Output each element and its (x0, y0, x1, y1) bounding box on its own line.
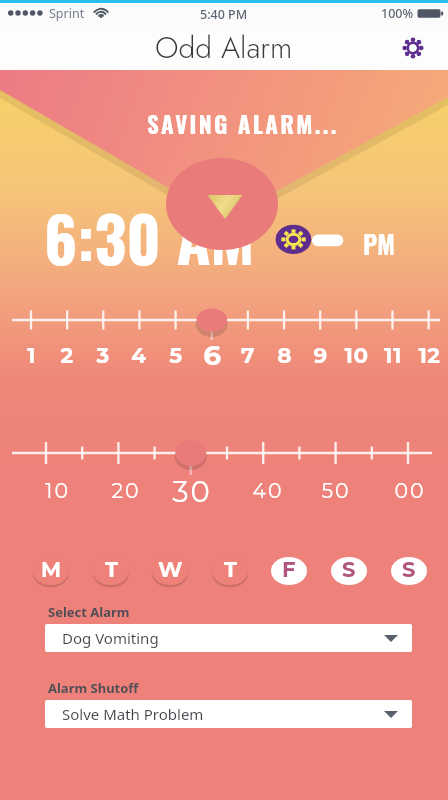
button[interactable]: 50 (308, 478, 364, 508)
staticText: 50 (321, 478, 351, 503)
staticText: 4 (131, 342, 147, 368)
button[interactable]: 30 (164, 474, 220, 504)
button[interactable]: Solve Math Problem (45, 700, 412, 728)
staticText: Alarm Shutoff (48, 679, 139, 697)
button[interactable]: 9 (300, 342, 340, 370)
button[interactable]: M (33, 557, 69, 585)
staticText: 6:30 AM (44, 191, 255, 283)
button[interactable]: Play alarm preview (166, 158, 278, 250)
staticText: 5 (169, 342, 183, 368)
button[interactable]: 7 (228, 342, 268, 370)
button[interactable]: 6 (192, 338, 232, 366)
staticText: 10 (344, 342, 369, 368)
staticText: 20 (111, 478, 141, 503)
staticText: Select Alarm (48, 603, 130, 621)
button[interactable]: 4 (119, 342, 159, 370)
button[interactable]: T (93, 557, 129, 585)
staticText: 1 (27, 342, 36, 368)
staticText: 8 (277, 342, 292, 368)
staticText: S (342, 557, 356, 583)
button[interactable]: S (391, 557, 427, 585)
button[interactable]: 2 (47, 342, 87, 370)
button[interactable]: 8 (264, 342, 304, 370)
staticText: F (282, 557, 296, 583)
staticText: W (158, 557, 183, 583)
button[interactable]: 12 (409, 342, 448, 370)
staticText: Odd Alarm (155, 26, 293, 69)
button[interactable]: 40 (240, 478, 296, 508)
button[interactable]: F (271, 557, 307, 585)
staticText: SAVING ALARM... (147, 107, 339, 141)
staticText: Sprint (49, 5, 85, 22)
staticText: 7 (241, 342, 255, 368)
staticText: Solve Math Problem (62, 704, 204, 724)
staticText: PM (363, 225, 395, 262)
staticText: 11 (384, 342, 402, 368)
staticText: Dog Vomiting (62, 628, 159, 648)
button[interactable]: Settings (391, 26, 435, 70)
staticText: 9 (313, 342, 328, 368)
staticText: 6 (203, 338, 222, 366)
staticText: 30 (172, 474, 212, 504)
button[interactable]: 10 (336, 342, 376, 370)
staticText: 100% (381, 5, 414, 22)
button[interactable]: 5 (156, 342, 196, 370)
staticText: 5:40 PM (200, 6, 248, 23)
button[interactable]: Toggle AM PM (274, 222, 346, 258)
staticText: 2 (60, 342, 74, 368)
staticText: 40 (252, 478, 284, 503)
staticText: 12 (418, 342, 441, 368)
button[interactable]: T (212, 557, 248, 585)
button[interactable]: 11 (373, 342, 413, 370)
staticText: 10 (45, 478, 70, 503)
staticText: 3 (96, 342, 110, 368)
button[interactable]: 00 (382, 478, 438, 508)
staticText: T (224, 557, 237, 583)
staticText: M (41, 557, 62, 583)
staticText: 00 (394, 478, 426, 503)
button[interactable]: 10 (29, 478, 85, 508)
button[interactable]: 1 (11, 342, 51, 370)
staticText: T (105, 557, 118, 583)
button[interactable]: Dog Vomiting (45, 624, 412, 652)
button[interactable]: 3 (83, 342, 123, 370)
staticText: S (402, 557, 416, 583)
button[interactable]: W (152, 557, 188, 585)
button[interactable]: 20 (98, 478, 154, 508)
button[interactable]: S (331, 557, 367, 585)
